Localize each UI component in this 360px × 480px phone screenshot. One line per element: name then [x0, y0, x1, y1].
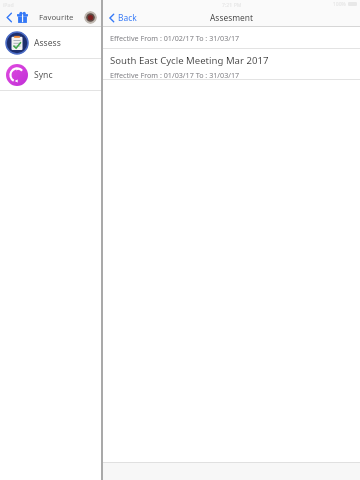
staticText: Effective From : 01/02/17 To : 31/03/17	[110, 33, 240, 43]
staticText: Sync	[34, 69, 53, 81]
staticText: Effective From : 01/03/17 To : 31/03/17	[110, 70, 240, 79]
staticText: 7:21 PM	[222, 1, 242, 8]
staticText: Assess	[34, 37, 61, 49]
button[interactable]: South East Cycle Meeting Mar 2017	[103, 49, 360, 79]
staticText: Back	[118, 12, 137, 23]
staticText: iPad	[3, 1, 14, 8]
staticText: 100%	[333, 1, 346, 8]
staticText: South East Cycle Meeting Mar 2017	[110, 54, 269, 67]
button[interactable]: Back	[103, 10, 143, 25]
button[interactable]: Home	[16, 11, 29, 24]
staticText: Assesment	[210, 12, 253, 23]
button[interactable]: Sync	[0, 59, 101, 90]
button[interactable]: Back	[4, 12, 15, 23]
button[interactable]: Profile	[84, 11, 97, 24]
staticText: Favourite	[39, 12, 74, 23]
button[interactable]: Assess	[0, 27, 101, 58]
button[interactable]: Effective From : 01/02/17 To : 31/03/17	[103, 27, 360, 48]
